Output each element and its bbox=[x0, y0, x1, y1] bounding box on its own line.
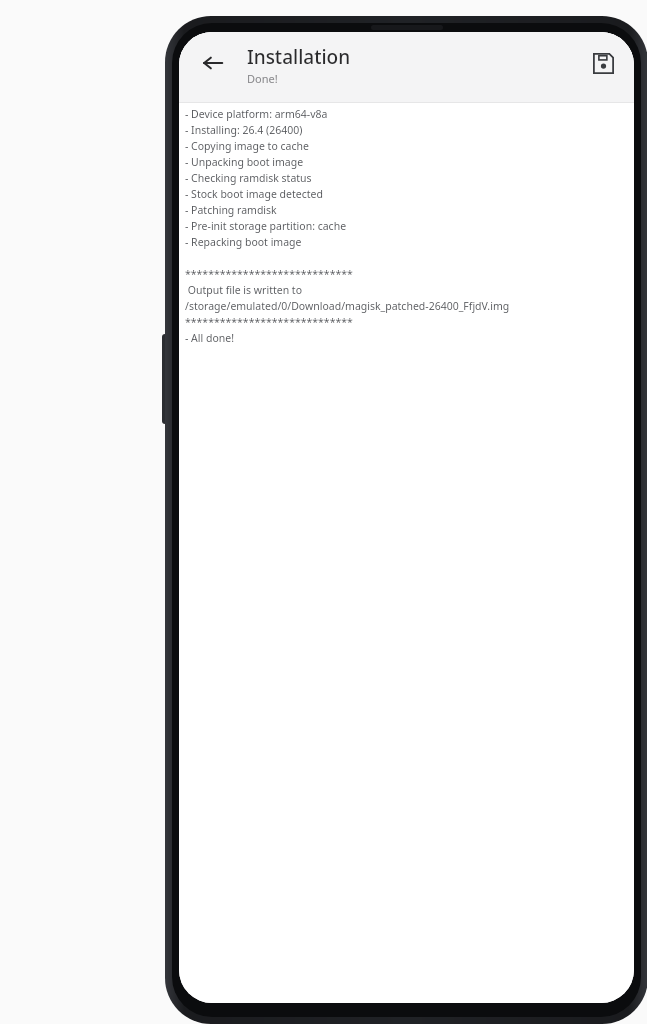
staticText: - Installing: 26.4 (26400) bbox=[185, 123, 303, 139]
staticText: ***************************** bbox=[185, 267, 353, 283]
staticText: - Unpacking boot image bbox=[185, 155, 304, 171]
staticText: /storage/emulated/0/Download/magisk_patc… bbox=[185, 299, 510, 315]
staticText: - Stock boot image detected bbox=[185, 187, 323, 203]
staticText: - Patching ramdisk bbox=[185, 203, 277, 219]
staticText: ***************************** bbox=[185, 315, 353, 331]
staticText: - Device platform: arm64-v8a bbox=[185, 107, 328, 123]
staticText: - Repacking boot image bbox=[185, 235, 302, 251]
button[interactable]: Back bbox=[191, 41, 235, 85]
staticText: - Checking ramdisk status bbox=[185, 171, 312, 187]
staticText: - Pre-init storage partition: cache bbox=[185, 219, 347, 235]
staticText: - Copying image to cache bbox=[185, 139, 309, 155]
button[interactable]: Save log bbox=[582, 42, 624, 84]
staticText: Output file is written to bbox=[185, 283, 302, 299]
staticText: - All done! bbox=[185, 331, 235, 347]
staticText: Done! bbox=[247, 71, 278, 86]
staticText: Installation bbox=[247, 44, 351, 70]
